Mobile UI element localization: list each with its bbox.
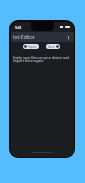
button[interactable]: More options xyxy=(65,34,72,41)
staticText: txt-Editor xyxy=(13,34,35,41)
button[interactable]: Import xyxy=(23,44,39,49)
staticText: Import xyxy=(28,45,37,49)
staticText: Save xyxy=(48,45,55,49)
button[interactable]: Save xyxy=(46,44,60,49)
staticText: 9:41 xyxy=(15,25,22,30)
staticText: Easily save files on your device and imp… xyxy=(13,55,72,63)
